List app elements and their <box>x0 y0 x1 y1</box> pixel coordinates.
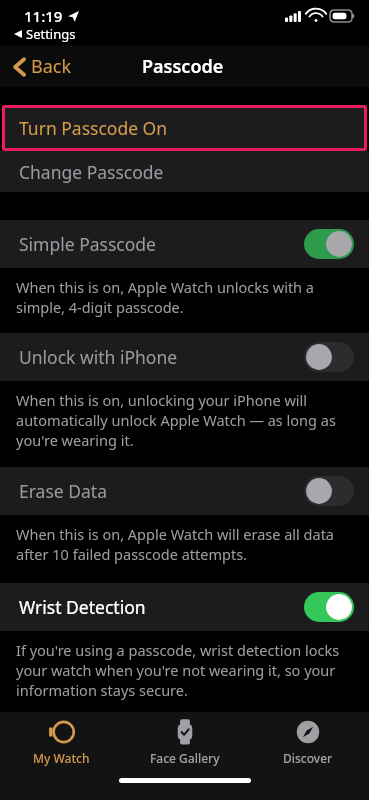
staticText: When this is on, Apple Watch unlocks wit… <box>16 277 353 317</box>
button[interactable]: Unlock with iPhone <box>0 333 369 381</box>
staticText: My Watch <box>33 750 90 766</box>
staticText: When this is on, unlocking your iPhone w… <box>16 390 353 450</box>
button[interactable]: Wrist Detection <box>0 583 369 631</box>
staticText: Simple Passcode <box>19 232 156 256</box>
staticText: If you're using a passcode, wrist detect… <box>16 640 353 700</box>
button[interactable]: Turn Passcode On <box>2 105 367 151</box>
staticText: Back <box>31 54 72 79</box>
staticText: Change Passcode <box>19 160 164 184</box>
staticText: Discover <box>283 750 333 766</box>
button[interactable]: My Watch <box>0 712 123 770</box>
button[interactable]: Change Passcode <box>0 151 369 192</box>
button[interactable]: Back <box>8 50 78 83</box>
button[interactable]: Face Gallery <box>123 712 246 770</box>
button[interactable]: Erase Data <box>0 467 369 515</box>
other: On <box>304 592 354 622</box>
staticText: Passcode <box>142 54 224 79</box>
staticText: Erase Data <box>19 479 107 503</box>
other: Off <box>304 342 354 372</box>
button[interactable]: Discover <box>246 712 369 770</box>
button[interactable]: Settings <box>12 24 78 44</box>
staticText: Unlock with iPhone <box>19 345 178 369</box>
staticText: Face Gallery <box>150 750 220 766</box>
staticText: Wrist Detection <box>19 595 146 619</box>
other: On <box>304 229 354 259</box>
staticText: Settings <box>26 25 76 43</box>
button[interactable]: Simple Passcode <box>0 220 369 268</box>
staticText: When this is on, Apple Watch will erase … <box>16 524 353 564</box>
other: Off <box>304 476 354 506</box>
staticText: 11:19 <box>24 6 63 26</box>
staticText: Turn Passcode On <box>19 116 168 140</box>
